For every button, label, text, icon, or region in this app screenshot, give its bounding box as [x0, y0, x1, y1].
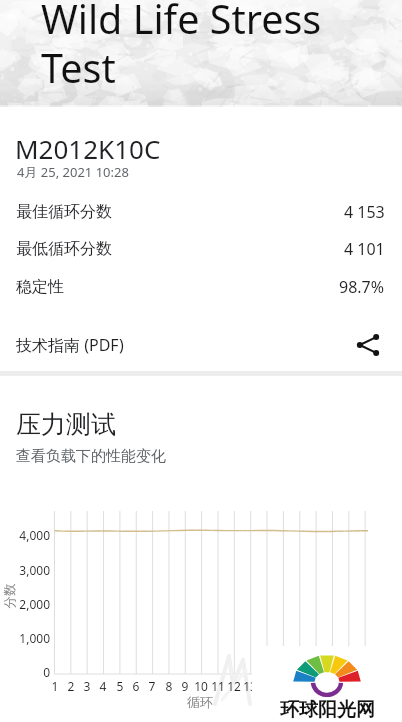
staticText: 最佳循环分数	[16, 202, 112, 222]
staticText: 5	[110, 678, 130, 694]
staticText: 1	[45, 678, 65, 694]
staticText: 循环	[187, 694, 213, 710]
staticText: 3	[77, 678, 97, 694]
staticText: 2	[61, 678, 81, 694]
staticText: 10	[191, 678, 211, 694]
staticText: 11	[208, 678, 228, 694]
staticText: 2,000	[8, 596, 50, 612]
staticText: Wild Life Stress Test	[41, 0, 331, 95]
staticText: 3,000	[8, 562, 50, 578]
staticText: 9	[175, 678, 195, 694]
staticText: 0	[8, 664, 50, 680]
staticText: 技术指南 (PDF)	[16, 334, 124, 356]
staticText: 环球阳光网	[280, 698, 375, 722]
staticText: 1,000	[8, 630, 50, 646]
staticText: 4 101	[344, 238, 385, 260]
button[interactable]: 技术指南 (PDF)	[16, 322, 383, 368]
staticText: 6	[126, 678, 146, 694]
staticText: 最低循环分数	[16, 239, 112, 259]
staticText: 4 153	[344, 201, 385, 223]
staticText: 分数	[1, 583, 17, 608]
staticText: 12	[224, 678, 244, 694]
staticText: 7	[142, 678, 162, 694]
staticText: M2012K10C	[15, 131, 161, 166]
staticText: 4月 25, 2021 10:28	[17, 163, 129, 181]
staticText: 4	[93, 678, 113, 694]
staticText: 稳定性	[16, 277, 64, 297]
staticText: 8	[159, 678, 179, 694]
staticText: 98.7%	[339, 276, 385, 298]
staticText: 压力测试	[16, 409, 116, 440]
staticText: 13	[240, 678, 260, 694]
staticText: 4,000	[8, 527, 50, 543]
button[interactable]: Share	[353, 330, 383, 360]
staticText: 查看负载下的性能变化	[16, 447, 166, 466]
